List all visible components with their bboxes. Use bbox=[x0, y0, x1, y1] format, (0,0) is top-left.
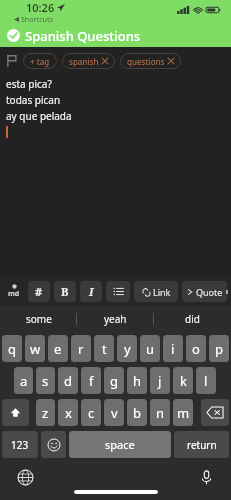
staticText: Link bbox=[153, 286, 171, 298]
button[interactable]: Emoji bbox=[41, 431, 66, 458]
button[interactable]: b bbox=[127, 399, 147, 426]
staticText: w bbox=[30, 340, 41, 358]
button[interactable]: Quote bbox=[182, 281, 227, 302]
staticText: space bbox=[105, 437, 135, 452]
button[interactable]: Backspace bbox=[201, 399, 229, 426]
button[interactable]: d bbox=[58, 367, 78, 394]
button[interactable]: m bbox=[173, 399, 193, 426]
button[interactable]: a bbox=[14, 367, 33, 394]
staticText: m bbox=[177, 404, 190, 422]
button[interactable]: l bbox=[196, 367, 216, 394]
button[interactable]: z bbox=[36, 399, 55, 426]
button[interactable]: x bbox=[58, 399, 78, 426]
staticText: # bbox=[35, 284, 43, 299]
staticText: 10:26 bbox=[26, 0, 55, 15]
button[interactable]: Link bbox=[134, 281, 178, 302]
button[interactable]: spanish bbox=[62, 53, 115, 69]
button[interactable]: g bbox=[104, 367, 124, 394]
staticText: esta pica? bbox=[6, 77, 52, 91]
staticText: t bbox=[102, 340, 107, 358]
button[interactable]: esta pica? bbox=[0, 74, 231, 276]
staticText: b bbox=[133, 404, 141, 422]
other: List bbox=[113, 286, 124, 297]
staticText: k bbox=[180, 372, 187, 390]
staticText: I bbox=[89, 284, 94, 299]
button[interactable]: y bbox=[117, 335, 137, 362]
staticText: f bbox=[89, 372, 94, 390]
staticText: j bbox=[158, 372, 162, 390]
button[interactable]: f bbox=[81, 367, 101, 394]
button[interactable]: t bbox=[94, 335, 114, 362]
staticText: p bbox=[215, 340, 223, 358]
staticText: l bbox=[204, 372, 208, 390]
button[interactable]: yeah bbox=[77, 306, 154, 332]
staticText: o bbox=[192, 340, 200, 358]
staticText: did bbox=[185, 312, 200, 326]
staticText: Shortcuts bbox=[21, 15, 54, 24]
staticText: md bbox=[8, 289, 20, 299]
staticText: todas pican bbox=[6, 93, 61, 107]
staticText: i bbox=[171, 340, 175, 358]
button[interactable]: j bbox=[150, 367, 170, 394]
staticText: spanish bbox=[69, 56, 99, 67]
button[interactable]: o bbox=[186, 335, 206, 362]
staticText: g bbox=[110, 372, 118, 390]
staticText: u bbox=[146, 340, 155, 358]
button[interactable]: did bbox=[154, 306, 231, 332]
staticText: n bbox=[156, 404, 165, 422]
staticText: 123 bbox=[11, 438, 29, 452]
staticText: e bbox=[54, 340, 62, 358]
button[interactable]: s bbox=[36, 367, 55, 394]
staticText: d bbox=[64, 372, 72, 390]
button[interactable]: space bbox=[69, 431, 171, 458]
button[interactable]: e bbox=[48, 335, 68, 362]
button[interactable]: List bbox=[106, 281, 130, 302]
staticText: a bbox=[20, 372, 28, 390]
staticText: r bbox=[78, 340, 84, 358]
staticText: Spanish Questions bbox=[25, 27, 141, 45]
staticText: ay que pelada bbox=[6, 109, 72, 123]
staticText: yeah bbox=[104, 312, 127, 326]
staticText: B bbox=[61, 284, 69, 299]
button[interactable]: 123 bbox=[2, 431, 38, 458]
button[interactable]: Change keyboard bbox=[14, 466, 36, 488]
button[interactable]: v bbox=[104, 399, 124, 426]
staticText: v bbox=[111, 404, 118, 422]
button[interactable]: r bbox=[71, 335, 91, 362]
button[interactable]: c bbox=[81, 399, 101, 426]
button[interactable]: I bbox=[80, 281, 102, 302]
staticText: q bbox=[8, 340, 16, 358]
button[interactable]: w bbox=[25, 335, 45, 362]
button[interactable]: # bbox=[28, 281, 50, 302]
staticText: questions bbox=[127, 56, 165, 67]
staticText: + tag bbox=[30, 56, 50, 67]
button[interactable]: Markdown bbox=[4, 281, 24, 302]
button[interactable]: i bbox=[163, 335, 183, 362]
staticText: z bbox=[42, 404, 49, 422]
staticText: Quote bbox=[196, 286, 223, 298]
button[interactable]: n bbox=[150, 399, 170, 426]
button[interactable]: q bbox=[2, 335, 22, 362]
button[interactable]: Dictate bbox=[195, 466, 217, 488]
button[interactable]: u bbox=[140, 335, 160, 362]
button[interactable]: questions bbox=[120, 53, 181, 69]
staticText: y bbox=[124, 340, 131, 358]
staticText: c bbox=[88, 404, 95, 422]
staticText: return bbox=[187, 438, 217, 452]
other: Flag bbox=[5, 54, 18, 67]
button[interactable]: h bbox=[127, 367, 147, 394]
staticText: h bbox=[133, 372, 142, 390]
button[interactable]: some bbox=[0, 306, 77, 332]
button[interactable]: k bbox=[173, 367, 193, 394]
staticText: some bbox=[26, 312, 52, 326]
button[interactable]: return bbox=[174, 431, 229, 458]
staticText: x bbox=[65, 404, 72, 422]
staticText: s bbox=[42, 372, 49, 390]
button[interactable]: Spanish Questions bbox=[0, 24, 231, 47]
button[interactable]: B bbox=[54, 281, 76, 302]
button[interactable]: Shift bbox=[2, 399, 29, 426]
button[interactable]: p bbox=[209, 335, 229, 362]
button[interactable]: + tag bbox=[23, 53, 57, 69]
